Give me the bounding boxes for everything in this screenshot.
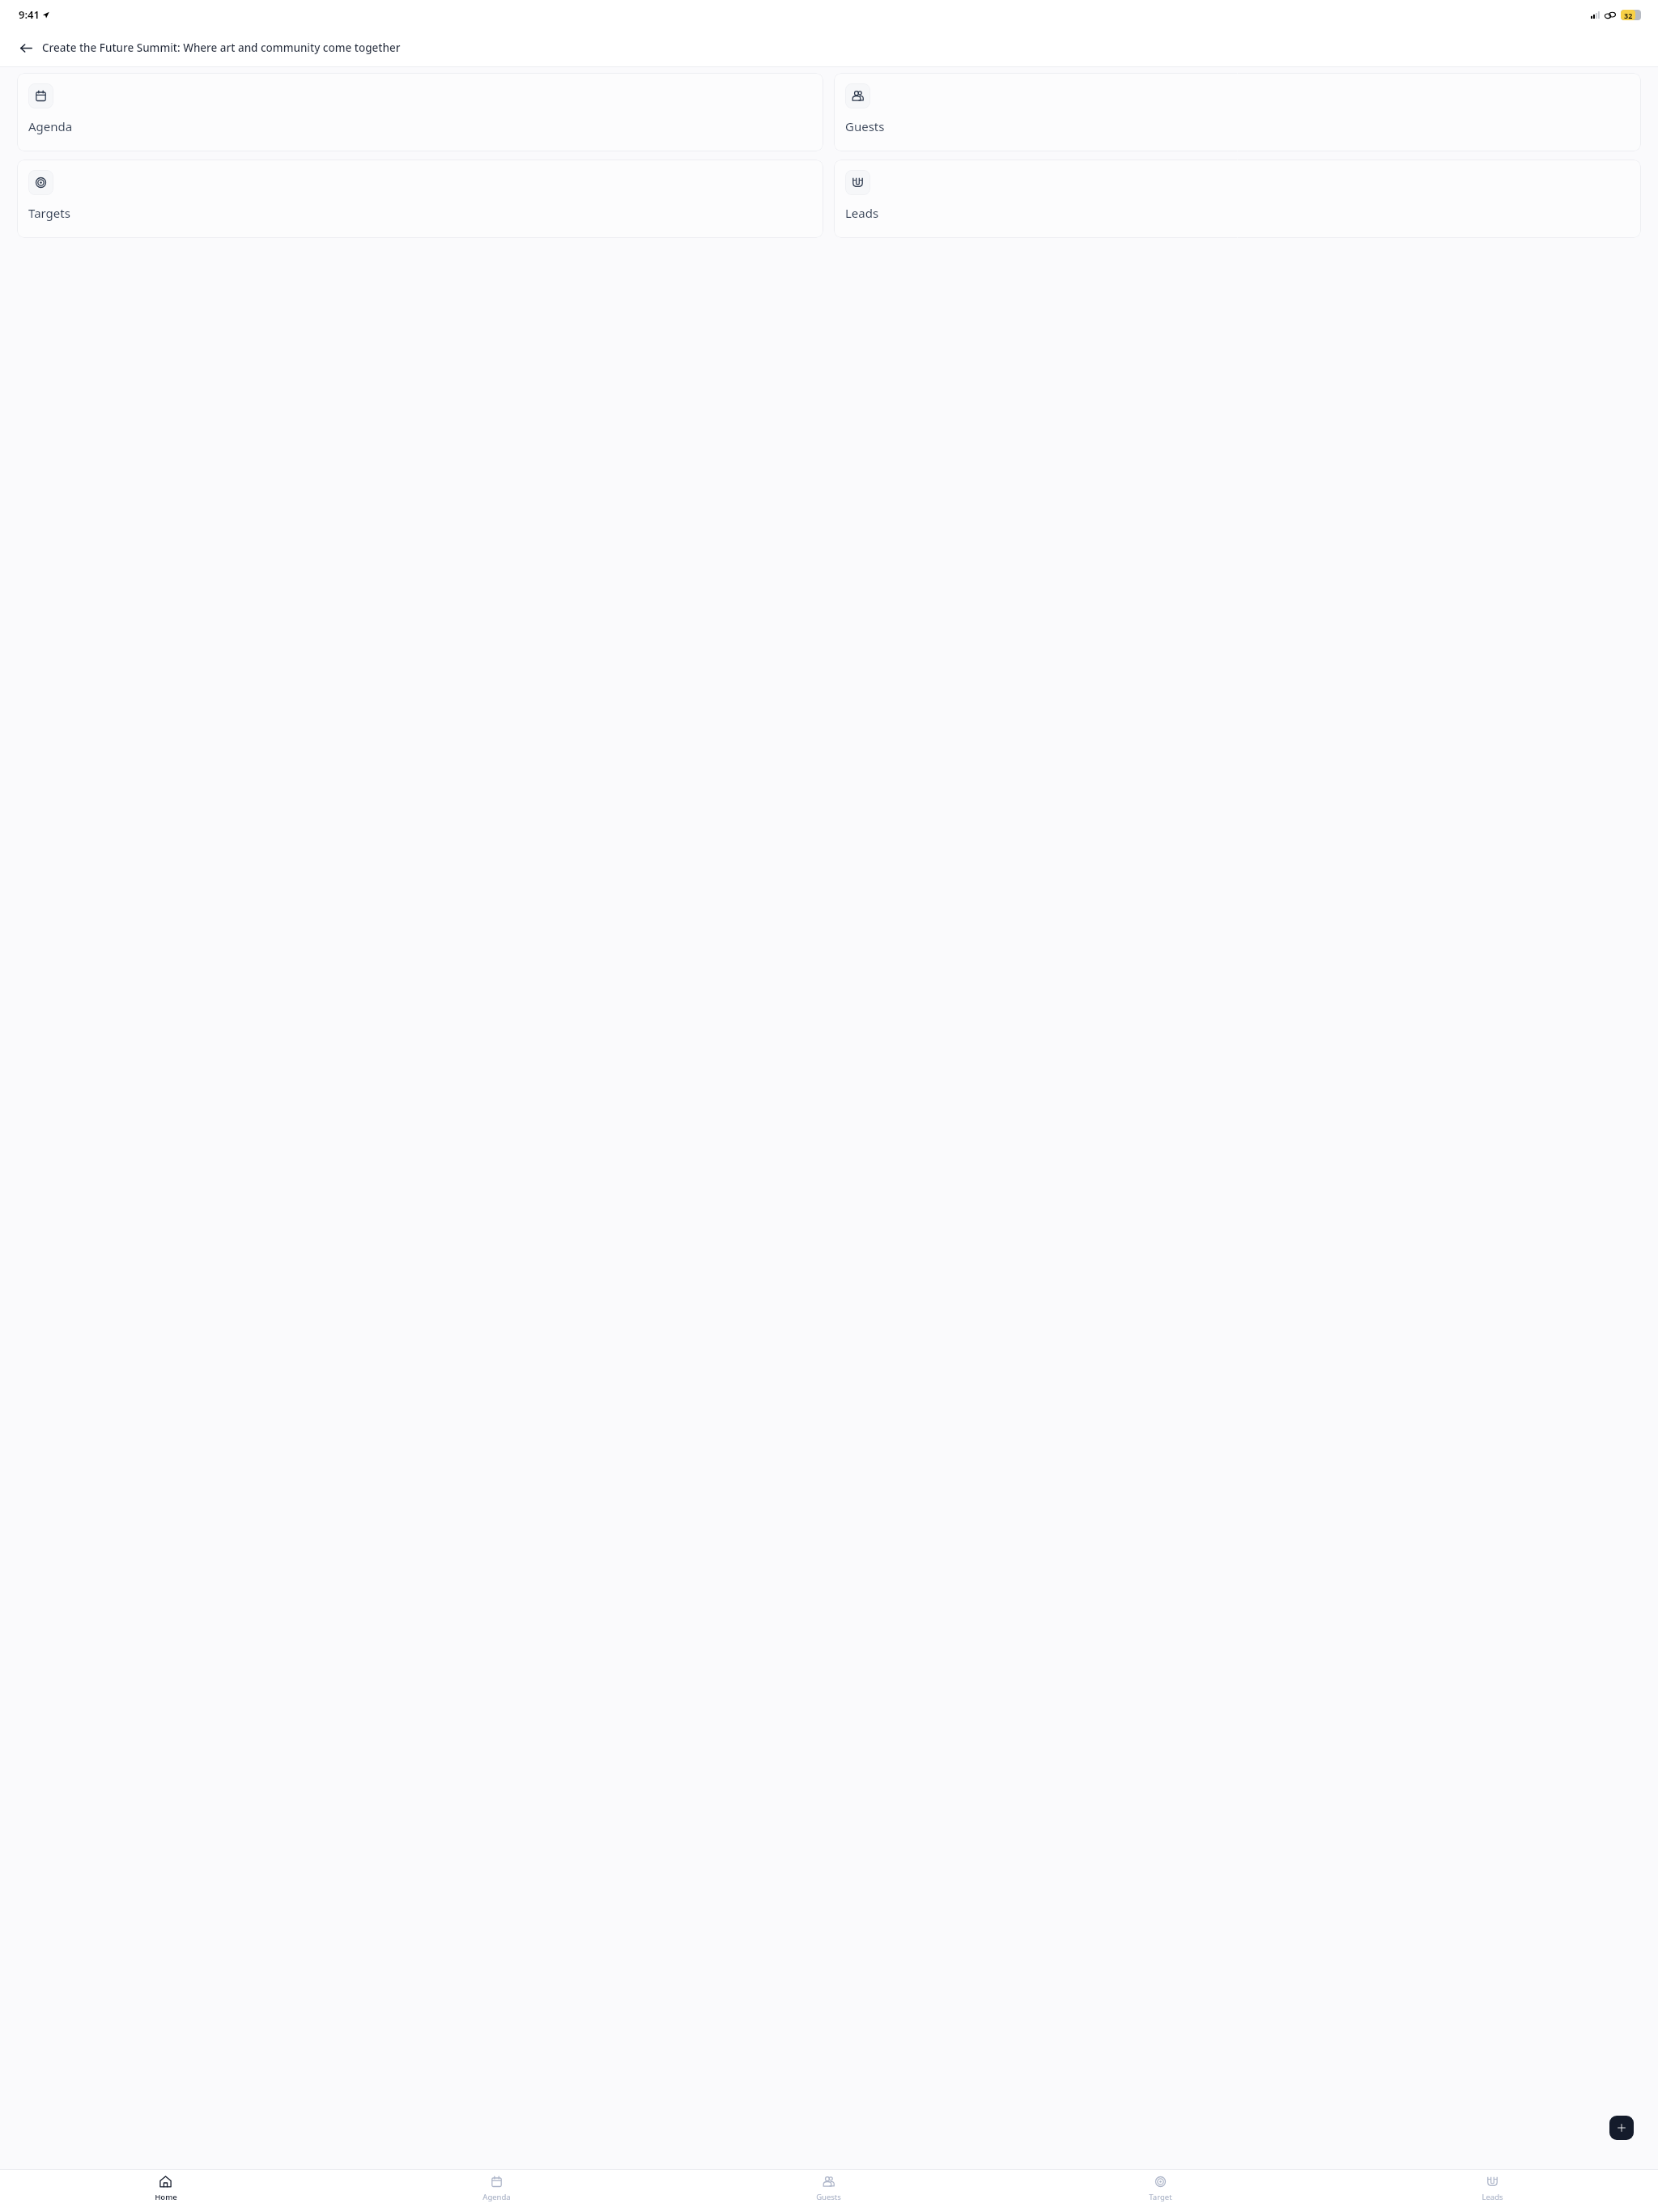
staticText: Create the Future Summit: Where art and … xyxy=(42,40,401,55)
staticText: Targets xyxy=(28,205,70,221)
staticText: Target xyxy=(1149,2192,1172,2202)
button[interactable]: Guests xyxy=(834,73,1641,151)
button[interactable]: Leads xyxy=(834,160,1641,238)
staticText: Leads xyxy=(845,205,879,221)
button[interactable]: Guests xyxy=(662,2170,994,2212)
button[interactable]: Agenda xyxy=(331,2170,662,2212)
staticText: Agenda xyxy=(483,2192,511,2202)
button[interactable]: Back xyxy=(17,39,35,57)
staticText: Guests xyxy=(816,2192,841,2202)
staticText: Guests xyxy=(845,118,885,134)
staticText: 9:41 xyxy=(19,7,40,22)
staticText: Agenda xyxy=(28,118,73,134)
staticText: Home xyxy=(155,2192,177,2202)
button[interactable]: Targets xyxy=(17,160,823,238)
staticText: Leads xyxy=(1482,2192,1503,2202)
button[interactable]: Add xyxy=(1609,2116,1634,2140)
button[interactable]: Agenda xyxy=(17,73,823,151)
button[interactable]: Home xyxy=(0,2170,331,2212)
button[interactable]: Target xyxy=(994,2170,1326,2212)
button[interactable]: Leads xyxy=(1326,2170,1658,2212)
staticText: 32 xyxy=(1624,11,1633,20)
